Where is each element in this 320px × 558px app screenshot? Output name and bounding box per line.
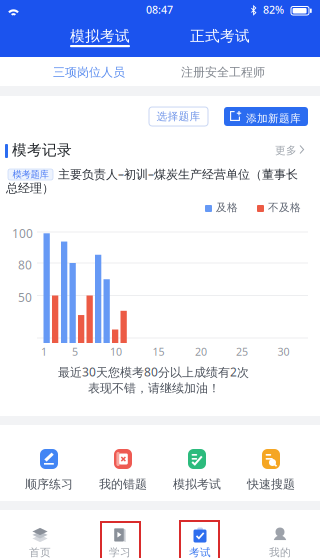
staticText: 模考记录: [12, 141, 72, 159]
button[interactable]: 学习: [80, 510, 160, 558]
staticText: 添加新题库: [246, 112, 301, 125]
button[interactable]: 我的错题: [86, 449, 160, 495]
button[interactable]: 添加新题库: [224, 107, 308, 126]
staticText: 25: [236, 344, 248, 359]
staticText: 选择题库: [156, 110, 200, 123]
staticText: 5: [72, 344, 78, 359]
button[interactable]: 更多: [275, 143, 309, 157]
button[interactable]: 正式考试: [160, 22, 320, 57]
staticText: 15: [152, 344, 164, 359]
staticText: 10: [110, 344, 122, 359]
staticText: 我的错题: [99, 477, 147, 492]
button[interactable]: 快速搜题: [234, 449, 308, 495]
staticText: 1: [41, 344, 47, 359]
button[interactable]: 选择题库: [149, 107, 208, 126]
button[interactable]: 我的: [240, 510, 320, 558]
staticText: 最近30天您模考80分以上成绩有2次: [58, 364, 249, 380]
staticText: 顺序练习: [25, 477, 73, 492]
staticText: 20: [195, 344, 207, 359]
staticText: 三项岗位人员: [53, 65, 125, 80]
staticText: 30: [277, 344, 289, 359]
staticText: 学习: [109, 546, 131, 558]
staticText: 模考题库: [12, 169, 48, 180]
button[interactable]: 考试: [160, 510, 240, 558]
staticText: 82%: [263, 2, 284, 17]
staticText: 50: [18, 289, 32, 305]
staticText: 80: [18, 257, 32, 273]
staticText: 快速搜题: [247, 477, 295, 492]
staticText: 表现不错，请继续加油！: [88, 381, 220, 396]
button[interactable]: 模拟考试: [160, 449, 234, 495]
button[interactable]: 顺序练习: [12, 449, 86, 495]
staticText: 我的: [269, 546, 291, 558]
staticText: 不及格: [268, 201, 301, 214]
staticText: 首页: [29, 546, 51, 558]
button[interactable]: 模拟考试: [0, 22, 160, 57]
button[interactable]: 首页: [0, 510, 80, 558]
staticText: 及格: [216, 201, 238, 214]
staticText: 100: [12, 225, 33, 241]
staticText: 模拟考试: [173, 477, 221, 492]
staticText: 08:47: [146, 2, 173, 17]
staticText: 总经理）: [6, 181, 54, 196]
staticText: 模拟考试: [70, 27, 130, 45]
staticText: 更多: [275, 144, 297, 157]
staticText: 主要负责人–初训–煤炭生产经营单位（董事长: [58, 166, 298, 182]
staticText: 考试: [189, 546, 211, 558]
staticText: 正式考试: [190, 27, 250, 45]
staticText: 注册安全工程师: [181, 65, 265, 80]
button[interactable]: 注册安全工程师: [160, 57, 320, 86]
button[interactable]: 三项岗位人员: [0, 57, 160, 86]
